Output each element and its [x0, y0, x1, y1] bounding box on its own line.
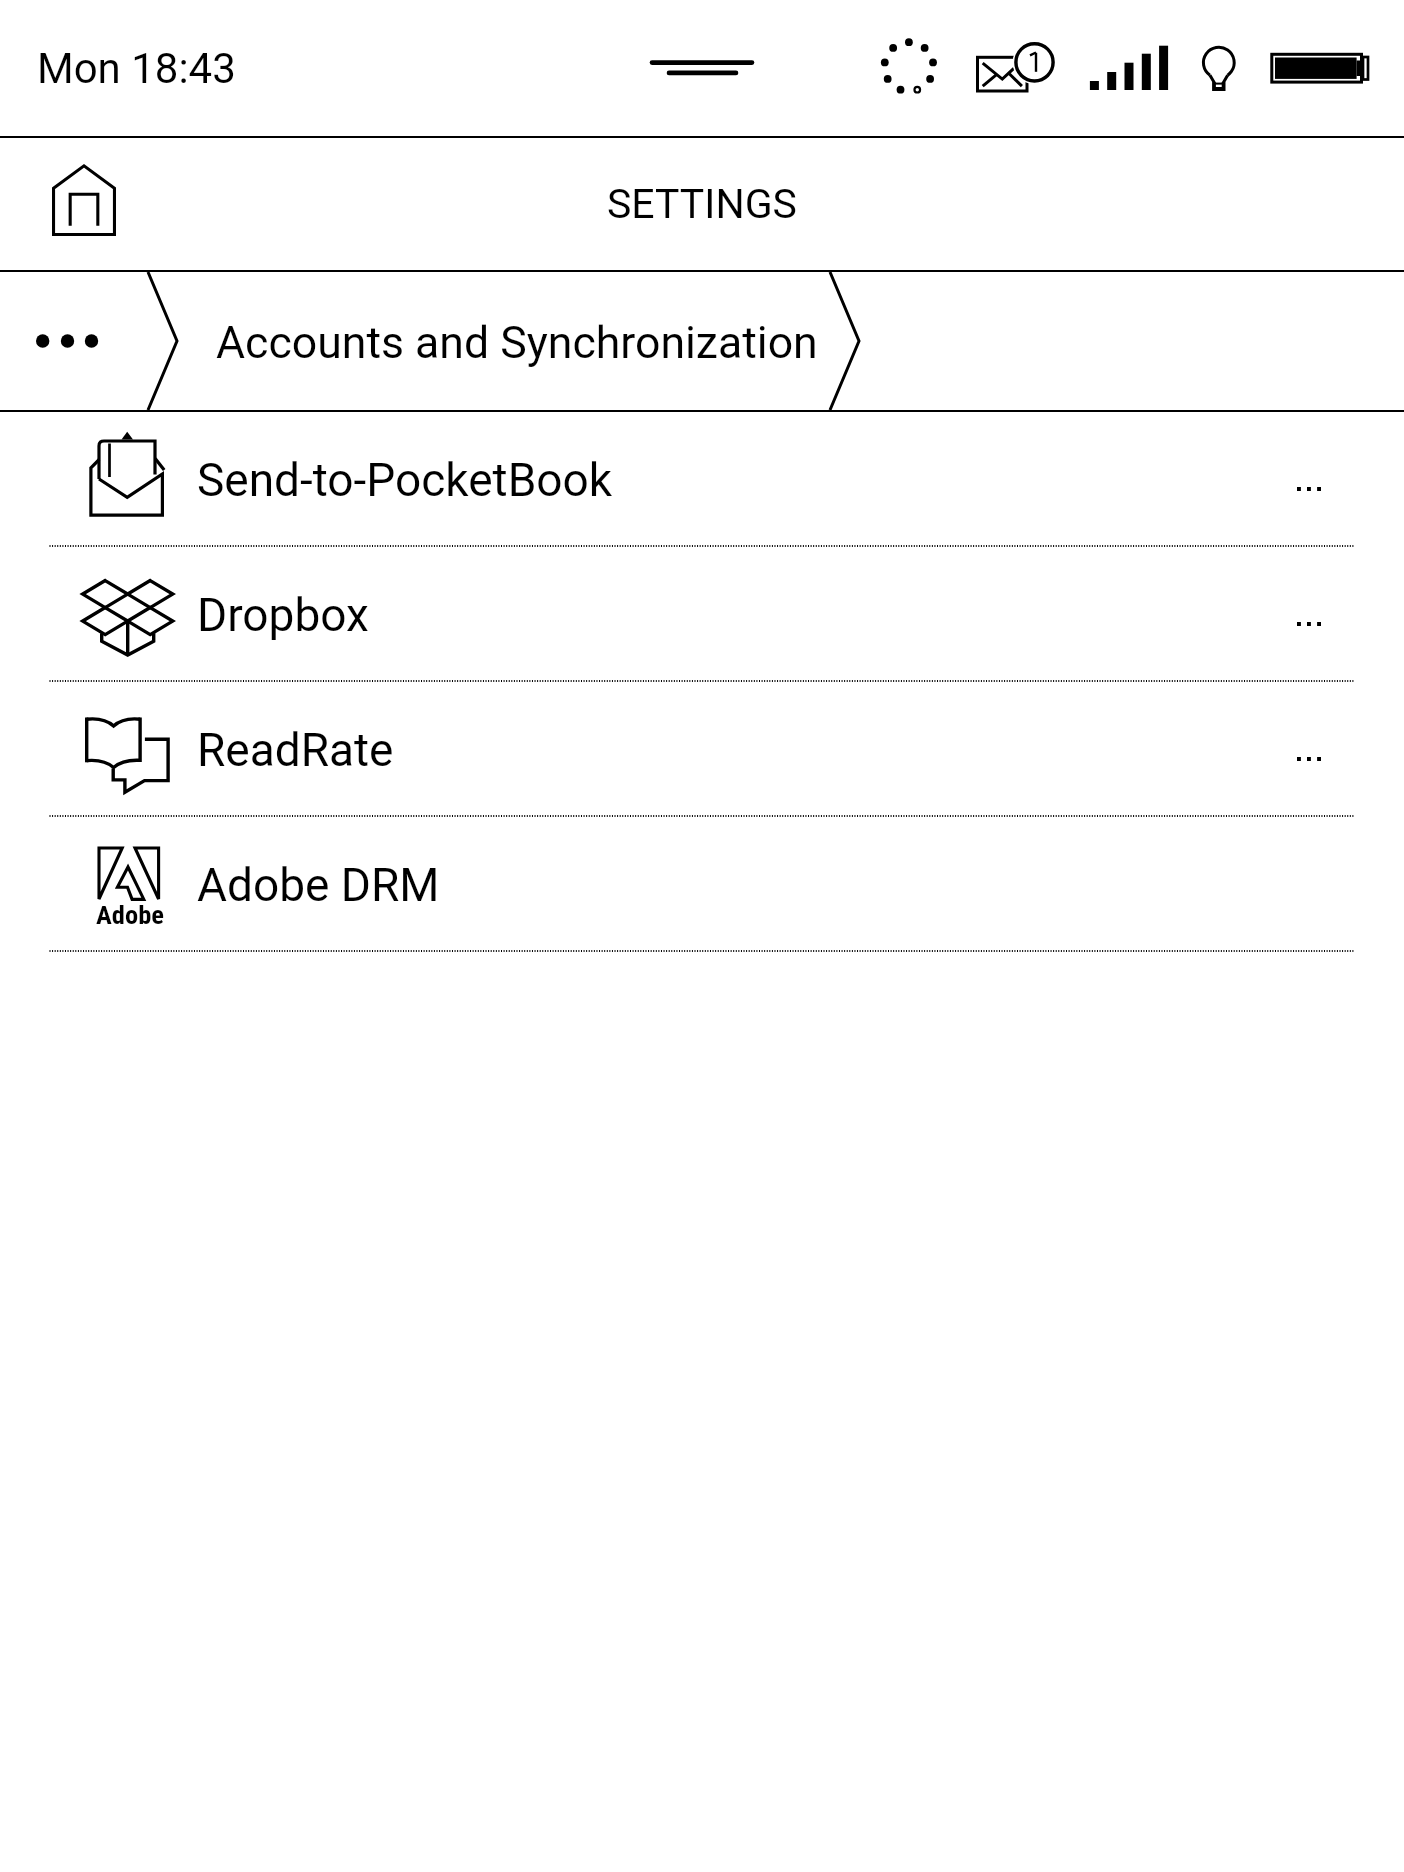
- button[interactable]: More: [0, 272, 148, 410]
- button[interactable]: More options for Dropbox: [1281, 570, 1337, 660]
- staticText: Accounts and Synchronization: [216, 317, 818, 369]
- staticText: ReadRate: [197, 723, 394, 777]
- staticText: SETTINGS: [607, 180, 797, 228]
- button[interactable]: Dropbox: [0, 547, 1404, 682]
- staticText: Send-to-PocketBook: [197, 453, 613, 507]
- button[interactable]: ReadRate: [0, 682, 1404, 817]
- staticText: Adobe: [96, 899, 164, 930]
- button[interactable]: Home: [14, 134, 154, 266]
- staticText: Dropbox: [197, 588, 369, 642]
- staticText: Mon 18:43: [37, 44, 236, 93]
- button[interactable]: Send-to-PocketBook: [0, 412, 1404, 547]
- staticText: Adobe DRM: [197, 858, 440, 912]
- button[interactable]: Accounts and Synchronization: [177, 272, 830, 410]
- button[interactable]: More options for Send-to-PocketBook: [1281, 435, 1337, 525]
- button[interactable]: More options for ReadRate: [1281, 705, 1337, 795]
- button[interactable]: Adobe: [0, 817, 1404, 952]
